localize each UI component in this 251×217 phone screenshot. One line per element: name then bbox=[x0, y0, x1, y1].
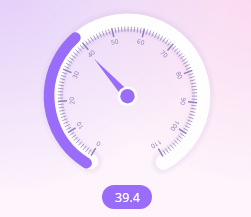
staticText: 39.4 bbox=[115, 189, 140, 206]
button[interactable]: 39.4 bbox=[102, 185, 152, 209]
